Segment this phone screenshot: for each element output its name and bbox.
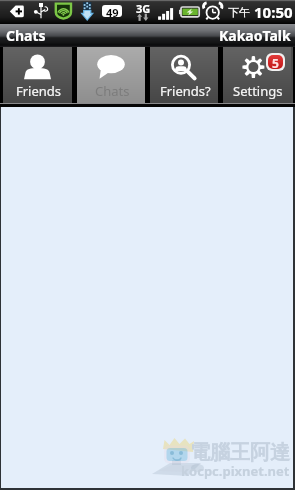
button[interactable]: Chats xyxy=(77,47,145,103)
staticText: 10:50 xyxy=(254,2,293,22)
staticText: 3G xyxy=(136,1,151,16)
button[interactable]: Friends? xyxy=(150,47,218,103)
button[interactable]: Settings xyxy=(223,47,291,103)
button[interactable]: Friends xyxy=(3,47,72,103)
staticText: Friends? xyxy=(160,82,211,100)
staticText: Chats xyxy=(6,26,46,45)
staticText: KakaoTalk xyxy=(219,26,291,45)
staticText: Settings xyxy=(233,82,283,100)
staticText: 下午 xyxy=(228,5,250,19)
staticText: kocpc.pixnet.net xyxy=(181,462,290,480)
staticText: Friends xyxy=(16,82,62,100)
staticText: 49 xyxy=(106,5,119,17)
staticText: 電腦王阿達 xyxy=(190,440,290,465)
staticText: Chats xyxy=(95,82,130,100)
staticText: 5 xyxy=(272,55,279,69)
